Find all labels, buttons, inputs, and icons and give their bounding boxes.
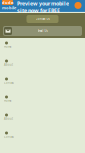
button[interactable]: About (0, 110, 85, 128)
staticText: Preview your mobile (17, 0, 69, 7)
button[interactable]: Contact (0, 74, 85, 92)
staticText: Home (4, 99, 12, 102)
staticText: Email Us (37, 29, 47, 33)
staticText: Contact (4, 81, 14, 84)
button[interactable]: Contact (0, 128, 85, 146)
staticText: duda (2, 0, 13, 5)
button[interactable]: Contact Us (26, 15, 58, 23)
staticText: About (4, 117, 13, 120)
staticText: mobile (2, 5, 16, 10)
staticText: Home (4, 45, 12, 48)
staticText: site now for FREE (17, 7, 60, 14)
button[interactable]: Email Us (3, 26, 82, 36)
button[interactable]: Home (0, 92, 85, 110)
staticText: Contact Us (35, 17, 49, 21)
button[interactable]: About (0, 56, 85, 74)
button[interactable]: duda (0, 0, 85, 13)
button[interactable]: Home (0, 38, 85, 56)
staticText: About (4, 63, 13, 66)
staticText: Contact (4, 135, 14, 138)
